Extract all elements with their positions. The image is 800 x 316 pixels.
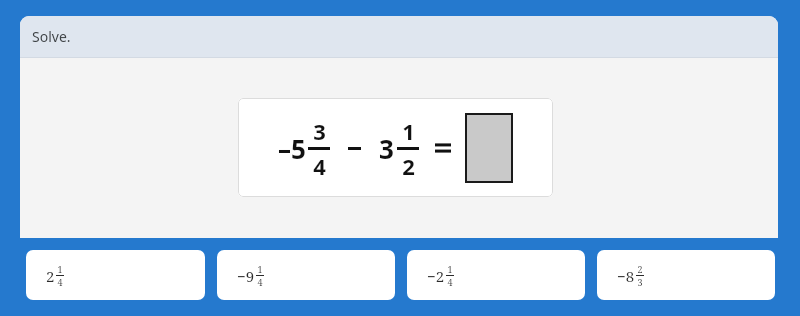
staticText: 1 bbox=[257, 263, 263, 275]
staticText: −9 bbox=[237, 266, 255, 286]
staticText: 2 bbox=[402, 151, 415, 181]
button[interactable]: −8 bbox=[597, 250, 775, 300]
staticText: 2 bbox=[46, 266, 55, 286]
staticText: −2 bbox=[427, 266, 445, 286]
staticText: Solve. bbox=[32, 27, 71, 46]
staticText: 2 bbox=[637, 263, 643, 275]
button[interactable]: 2 bbox=[26, 250, 205, 300]
button[interactable]: −2 bbox=[407, 250, 585, 300]
staticText: 3 bbox=[637, 276, 643, 288]
staticText: 4 bbox=[257, 276, 263, 288]
staticText: −8 bbox=[617, 266, 635, 286]
staticText: 3 bbox=[313, 116, 326, 146]
staticText: 3 bbox=[379, 131, 394, 166]
staticText: 1 bbox=[402, 116, 415, 146]
staticText: 1 bbox=[57, 263, 63, 275]
staticText: –5 bbox=[278, 131, 306, 166]
staticText: 4 bbox=[447, 276, 453, 288]
button[interactable]: −9 bbox=[217, 250, 395, 300]
staticText: 1 bbox=[447, 263, 453, 275]
staticText: 4 bbox=[313, 151, 326, 181]
staticText: 4 bbox=[57, 276, 63, 288]
